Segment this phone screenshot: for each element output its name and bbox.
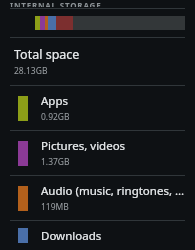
button[interactable]: Pictures, videos bbox=[0, 131, 195, 175]
button[interactable]: Audio (music, ringtones, podc.. bbox=[0, 176, 195, 220]
staticText: Audio (music, ringtones, podc.. bbox=[41, 183, 187, 199]
staticText: 1.37GB bbox=[41, 156, 70, 168]
staticText: INTERNAL STORAGE bbox=[10, 0, 102, 7]
button[interactable]: Total space bbox=[0, 38, 195, 85]
button[interactable]: Apps bbox=[0, 86, 195, 130]
staticText: 119MB bbox=[41, 201, 69, 213]
staticText: Apps bbox=[41, 93, 69, 109]
staticText: Total space bbox=[14, 46, 80, 63]
staticText: 0.92GB bbox=[41, 111, 70, 123]
staticText: 28.13GB bbox=[14, 65, 48, 77]
staticText: Pictures, videos bbox=[41, 138, 126, 154]
staticText: Downloads bbox=[41, 228, 102, 243]
button[interactable]: Downloads bbox=[0, 221, 195, 250]
